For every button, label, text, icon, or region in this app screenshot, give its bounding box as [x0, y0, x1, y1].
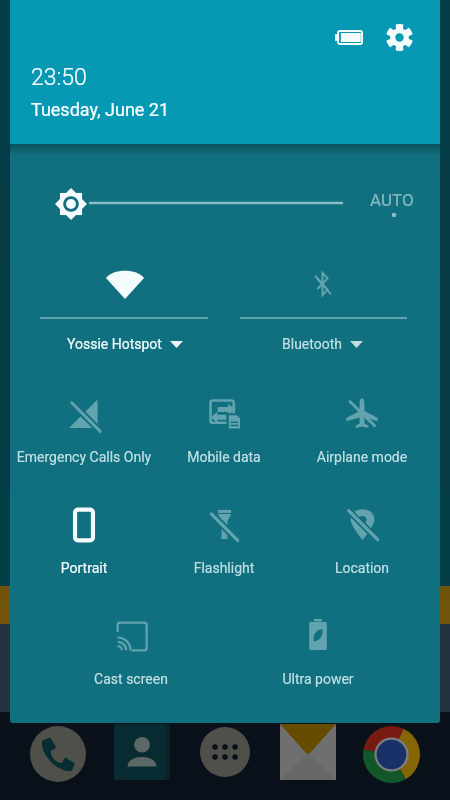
- button[interactable]: Chrome: [363, 726, 420, 783]
- staticText: Tuesday, June 21: [31, 99, 170, 120]
- button[interactable]: Yossie Hotspot: [40, 252, 208, 358]
- button[interactable]: Apps: [200, 727, 250, 777]
- staticText: Mobile data: [149, 449, 299, 465]
- button[interactable]: Emergency Calls Only: [10, 388, 159, 469]
- button[interactable]: Portrait: [10, 501, 159, 580]
- button[interactable]: Settings: [386, 24, 413, 51]
- button[interactable]: Ultra power: [243, 610, 393, 691]
- staticText: Ultra power: [243, 671, 393, 687]
- staticText: Bluetooth: [282, 336, 342, 352]
- staticText: Airplane mode: [287, 449, 437, 465]
- button[interactable]: Airplane mode: [287, 389, 437, 469]
- staticText: Location: [287, 560, 437, 576]
- staticText: Cast screen: [56, 671, 206, 687]
- button[interactable]: Email: [280, 724, 336, 780]
- staticText: AUTO: [370, 190, 414, 210]
- button[interactable]: Mobile data: [149, 390, 299, 469]
- staticText: Yossie Hotspot: [67, 336, 162, 352]
- button[interactable]: Bluetooth: [240, 252, 407, 358]
- staticText: Portrait: [10, 560, 159, 576]
- button[interactable]: Location: [287, 500, 437, 580]
- button[interactable]: Brightness: [55, 188, 87, 220]
- staticText: Flashlight: [149, 560, 299, 576]
- button[interactable]: Phone: [30, 726, 86, 782]
- button[interactable]: Contacts: [114, 724, 170, 780]
- button[interactable]: Flashlight: [149, 500, 299, 580]
- button[interactable]: Cast screen: [56, 612, 206, 691]
- button[interactable]: Battery: [335, 30, 363, 45]
- staticText: 23:50: [31, 64, 87, 91]
- staticText: Emergency Calls Only: [10, 449, 159, 465]
